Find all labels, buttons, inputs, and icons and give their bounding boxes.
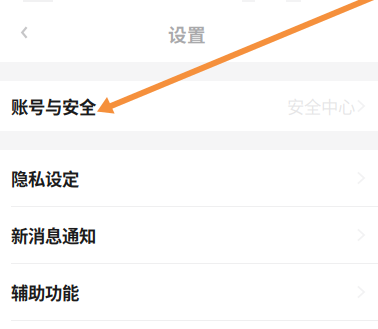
button[interactable]: 辅助功能	[0, 264, 378, 320]
staticText: 新消息通知	[11, 222, 96, 248]
staticText: 账号与安全	[11, 93, 96, 119]
button[interactable]: 隐私设定	[0, 150, 378, 206]
staticText: 隐私设定	[11, 165, 79, 191]
staticText: 安全中心	[287, 93, 355, 119]
staticText: 设置	[168, 20, 206, 47]
button[interactable]: Back	[0, 0, 54, 62]
button[interactable]: 新消息通知	[0, 207, 378, 263]
button[interactable]: 账号与安全	[0, 81, 378, 131]
staticText: 辅助功能	[11, 279, 79, 305]
